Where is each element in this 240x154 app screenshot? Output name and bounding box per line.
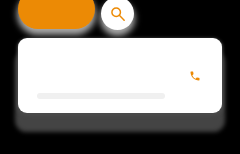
button[interactable]: Search: [101, 0, 134, 30]
button[interactable]: Call: [184, 65, 206, 87]
button[interactable]: Call: [18, 38, 222, 113]
button[interactable]: [18, 0, 95, 29]
